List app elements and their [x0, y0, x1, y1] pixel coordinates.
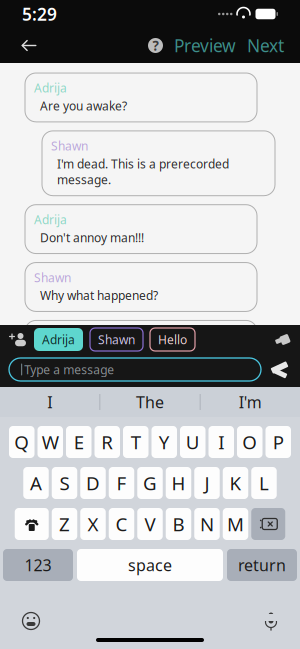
button[interactable]: return	[227, 549, 297, 581]
button[interactable]: B	[166, 508, 191, 540]
button[interactable]: S	[52, 467, 77, 499]
staticText: 123	[24, 554, 51, 576]
button[interactable]: space	[77, 549, 223, 581]
staticText: D	[86, 471, 100, 495]
button[interactable]: Y	[151, 426, 177, 458]
staticText: J	[204, 471, 209, 495]
button[interactable]: Shawn	[42, 131, 275, 196]
staticText: Adrija	[34, 80, 67, 96]
staticText: C	[115, 512, 127, 536]
button[interactable]: F	[109, 467, 134, 499]
button[interactable]: E	[66, 426, 91, 458]
staticText: Hello	[158, 331, 187, 347]
staticText: B	[172, 512, 184, 536]
staticText: Preview	[174, 34, 236, 57]
button[interactable]: A	[23, 467, 49, 499]
button[interactable]: Delete	[251, 508, 285, 540]
staticText: N	[200, 512, 214, 536]
staticText: Next	[247, 34, 284, 57]
button[interactable]: K	[223, 467, 248, 499]
button[interactable]: The	[100, 391, 200, 413]
staticText: X	[87, 512, 98, 536]
staticText: R	[101, 430, 113, 454]
button[interactable]: Shawn	[25, 262, 257, 311]
staticText: Why what happened?	[40, 287, 158, 303]
button[interactable]: G	[137, 467, 163, 499]
staticText: I'm	[239, 391, 262, 413]
button[interactable]: Adrija	[25, 205, 257, 254]
staticText: Shawn	[98, 331, 135, 347]
staticText: Adrija	[34, 212, 67, 228]
button[interactable]: Dictate	[260, 609, 282, 633]
button[interactable]: N	[194, 508, 220, 540]
staticText: I'm dead. This is a prerecorded message.	[57, 156, 229, 188]
button[interactable]: J	[194, 467, 220, 499]
staticText: The	[136, 391, 164, 413]
staticText: O	[242, 430, 257, 454]
staticText: K	[229, 471, 241, 495]
button[interactable]: Adrija	[25, 73, 257, 122]
staticText: G	[143, 471, 157, 495]
button[interactable]: O	[237, 426, 262, 458]
staticText: F	[116, 471, 126, 495]
staticText: H	[171, 471, 185, 495]
staticText: I	[218, 430, 224, 454]
button[interactable]: W	[37, 426, 63, 458]
staticText: return	[238, 554, 286, 576]
button[interactable]: Shift	[15, 508, 49, 540]
button[interactable]: Add person	[9, 331, 27, 347]
staticText: V	[144, 512, 155, 536]
button[interactable]: V	[137, 508, 163, 540]
button[interactable]: U	[180, 426, 205, 458]
button[interactable]: Help	[148, 38, 163, 53]
button[interactable]: Adrija	[34, 328, 83, 351]
button[interactable]: Shawn	[90, 328, 143, 351]
staticText: Y	[159, 430, 170, 454]
button[interactable]: Type a message	[9, 358, 261, 381]
button[interactable]: Q	[9, 426, 34, 458]
staticText: A	[30, 471, 42, 495]
button[interactable]: I	[208, 426, 234, 458]
button[interactable]: R	[94, 426, 120, 458]
staticText: Shawn	[51, 138, 88, 154]
button[interactable]: 123	[3, 549, 73, 581]
staticText: Adrija	[34, 327, 67, 343]
staticText: ?	[152, 37, 158, 54]
button[interactable]: M	[223, 508, 248, 540]
button[interactable]: I	[0, 391, 99, 413]
staticText: Nothing..	[40, 345, 90, 361]
staticText: W	[42, 430, 59, 454]
button[interactable]: I'm	[201, 391, 300, 413]
button[interactable]: D	[80, 467, 106, 499]
button[interactable]: Adrija	[25, 320, 257, 369]
button[interactable]: Back	[12, 28, 46, 62]
button[interactable]: P	[265, 426, 291, 458]
staticText: Don't annoy man!!!	[40, 230, 144, 245]
staticText: P	[273, 430, 284, 454]
staticText: T	[131, 430, 141, 454]
button[interactable]: Send	[270, 361, 289, 378]
staticText: Z	[59, 512, 70, 536]
staticText: Type a message	[24, 361, 114, 377]
staticText: L	[259, 471, 269, 495]
button[interactable]: H	[166, 467, 191, 499]
button[interactable]: C	[109, 508, 134, 540]
staticText: M	[227, 512, 244, 536]
button[interactable]: T	[123, 426, 148, 458]
button[interactable]: Hello	[150, 328, 195, 351]
button[interactable]: L	[251, 467, 277, 499]
staticText: space	[128, 554, 172, 576]
staticText: Q	[14, 430, 29, 454]
staticText: I	[47, 391, 52, 413]
button[interactable]: Z	[52, 508, 77, 540]
staticText: Are you awake?	[40, 98, 127, 114]
staticText: Shawn	[34, 269, 71, 285]
staticText: S	[59, 471, 69, 495]
staticText: 5:29	[22, 2, 57, 25]
button[interactable]: Emoji	[18, 608, 44, 634]
button[interactable]: Next	[247, 28, 284, 63]
button[interactable]: Announce	[275, 332, 291, 346]
button[interactable]: Preview	[163, 28, 247, 63]
staticText: U	[186, 430, 200, 454]
button[interactable]: X	[80, 508, 106, 540]
